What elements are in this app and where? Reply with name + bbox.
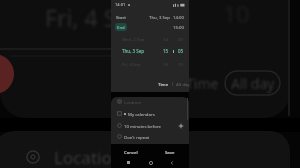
button[interactable]: Start xyxy=(111,12,189,22)
button[interactable]: All day xyxy=(173,79,193,88)
staticText: Don't repeat xyxy=(124,134,150,140)
staticText: Fri, 4 Se xyxy=(45,2,130,33)
button[interactable]: Cancel xyxy=(111,146,150,158)
staticText: Cancel xyxy=(124,149,138,155)
staticText: My calendars xyxy=(128,111,155,117)
staticText: Wed, 2 Sep xyxy=(122,36,145,42)
staticText: End xyxy=(117,24,125,30)
staticText: 00 xyxy=(178,36,183,42)
button[interactable]: Time xyxy=(155,79,172,88)
staticText: Location xyxy=(54,146,123,168)
button[interactable]: Home xyxy=(146,158,155,167)
staticText: 14:00 xyxy=(173,14,184,20)
other: Add reminder xyxy=(178,123,184,129)
button[interactable]: Back xyxy=(167,158,176,167)
staticText: Location xyxy=(124,99,142,105)
staticText: 10 minutes before xyxy=(124,123,161,129)
staticText: All day xyxy=(231,74,275,93)
staticText: 10 xyxy=(178,61,183,67)
staticText: Time xyxy=(186,74,219,93)
button[interactable]: End xyxy=(111,21,189,32)
staticText: 16 xyxy=(163,61,168,67)
button[interactable]: Save xyxy=(150,146,189,158)
staticText: All day xyxy=(176,81,190,87)
staticText: 14 xyxy=(163,36,168,42)
staticText: Time xyxy=(158,81,169,87)
button[interactable]: Recents xyxy=(124,158,133,167)
staticText: Start xyxy=(116,14,126,20)
staticText: Thu, 3 Sep xyxy=(122,48,145,54)
staticText: 14:01 xyxy=(115,2,126,7)
button[interactable]: Don't repeat xyxy=(111,131,189,142)
button[interactable]: 10 minutes before xyxy=(111,120,189,131)
staticText: 15:00 xyxy=(173,24,184,30)
button[interactable]: My calendars xyxy=(111,108,189,119)
staticText: 05 xyxy=(178,48,184,54)
staticText: 15 xyxy=(163,48,169,54)
staticText: Save xyxy=(165,149,175,155)
staticText: Fri, 4 Sep xyxy=(122,61,141,67)
button[interactable]: Location xyxy=(111,96,189,107)
staticText: Thu, 3 Sep xyxy=(149,14,170,20)
